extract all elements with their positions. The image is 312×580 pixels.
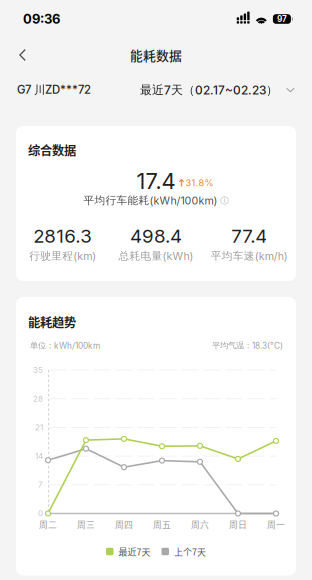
staticText: 28 [33, 394, 43, 404]
staticText: 21 [35, 423, 43, 432]
staticText: 周三 [77, 518, 95, 531]
staticText: 周二 [39, 518, 57, 531]
staticText: 2816.3 [33, 225, 92, 247]
staticText: 能耗数据 [130, 46, 182, 64]
staticText: 最近7天 [118, 545, 150, 558]
staticText: 35 [33, 365, 43, 375]
staticText: 周四 [115, 518, 133, 531]
staticText: 行驶里程(km) [29, 249, 96, 263]
staticText: 09:36 [23, 11, 60, 27]
button[interactable]: 最近7天（02.17~02.23） [140, 73, 295, 106]
staticText: 31.8% [185, 177, 213, 188]
staticText: 周日 [229, 518, 247, 531]
staticText: 能耗趋势 [28, 313, 76, 331]
staticText: 14 [35, 451, 43, 461]
staticText: 周一 [267, 518, 285, 531]
staticText: 97 [277, 14, 287, 24]
staticText: 平均气温：18.3(°C) [212, 340, 283, 351]
staticText: 7 [38, 480, 43, 489]
staticText: 综合数据 [28, 141, 76, 159]
staticText: 77.4 [231, 225, 267, 247]
staticText: i [224, 197, 225, 204]
button[interactable]: G7 川ZD***72 [17, 74, 91, 106]
staticText: 上个7天 [174, 545, 206, 558]
staticText: 单位：kWh/100km [30, 340, 100, 351]
staticText: 17.4 [136, 168, 175, 194]
staticText: 平均行车能耗(kWh/100km) [83, 194, 217, 207]
staticText: 498.4 [130, 225, 182, 247]
button[interactable]: Back [0, 39, 38, 71]
staticText: 总耗电量(kWh) [118, 249, 193, 263]
staticText: 0 [38, 508, 43, 518]
staticText: G7 川ZD***72 [17, 83, 91, 97]
staticText: 最近7天（02.17~02.23） [140, 82, 278, 97]
staticText: 周六 [191, 518, 209, 531]
staticText: 周五 [153, 518, 171, 531]
staticText: 平均车速(km/h) [211, 249, 288, 263]
